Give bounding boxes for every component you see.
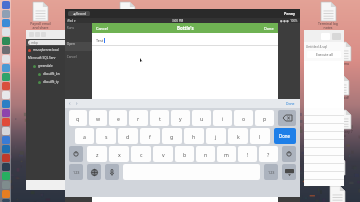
button[interactable]: u xyxy=(192,110,211,126)
staticText: e xyxy=(117,115,120,122)
staticText: s xyxy=(105,133,108,140)
button[interactable]: Dock app 15 xyxy=(2,136,10,144)
staticText: ◀ Record xyxy=(73,12,86,16)
staticText: w xyxy=(96,115,101,122)
button[interactable]: ? xyxy=(259,146,278,162)
staticText: o xyxy=(242,115,246,122)
button[interactable]: j xyxy=(206,128,226,144)
button[interactable]: Dock app 10 xyxy=(2,91,10,99)
staticText: k xyxy=(237,133,240,140)
button[interactable]: f xyxy=(140,128,160,144)
button[interactable]: o xyxy=(234,110,253,126)
button[interactable]: Numbers right xyxy=(264,164,278,180)
button[interactable]: e xyxy=(109,110,127,126)
button[interactable]: w xyxy=(89,110,107,126)
button[interactable]: Cancel xyxy=(65,55,92,64)
button[interactable]: k xyxy=(228,128,248,144)
button[interactable]: dbo.dflt_ty xyxy=(26,78,92,86)
button[interactable]: v xyxy=(153,146,173,162)
button[interactable]: Dock app 7 xyxy=(2,64,10,72)
staticText: about the cloud pdf xyxy=(40,57,56,66)
staticText: 123 xyxy=(268,170,275,175)
button[interactable]: p xyxy=(255,110,274,126)
staticText: ! xyxy=(247,151,249,158)
button[interactable]: a xyxy=(75,128,94,144)
button[interactable]: Backspace xyxy=(278,110,296,126)
button[interactable]: b xyxy=(175,146,194,162)
button[interactable]: Previous field xyxy=(69,100,71,107)
button[interactable]: Dictate xyxy=(105,164,119,180)
staticText: r xyxy=(137,115,140,122)
button[interactable]: Dock app 3 xyxy=(2,28,10,36)
button[interactable]: Hide keyboard xyxy=(282,164,296,180)
button[interactable]: h xyxy=(184,128,204,144)
button[interactable]: Dock app 5 xyxy=(2,46,10,54)
button[interactable]: Test xyxy=(92,36,278,45)
button[interactable]: q xyxy=(69,110,87,126)
button[interactable]: Dock app 22 xyxy=(2,199,10,202)
button[interactable]: Dock app 8 xyxy=(2,73,10,81)
button[interactable]: Dock app 6 xyxy=(2,55,10,63)
button[interactable]: Dock app 4 xyxy=(2,37,10,45)
button[interactable]: Dock app 0 xyxy=(2,1,10,9)
button[interactable]: g xyxy=(162,128,182,144)
button[interactable]: Numbers xyxy=(69,164,83,180)
button[interactable]: Emoji xyxy=(87,164,101,180)
button[interactable]: Dock app 19 xyxy=(2,172,10,180)
button[interactable]: ! xyxy=(238,146,257,162)
button[interactable]: ms-sqlserver.local xyxy=(26,46,92,54)
button[interactable]: Next field xyxy=(76,100,78,107)
button[interactable]: Shift right xyxy=(282,146,296,162)
staticText: b xyxy=(183,151,187,158)
button[interactable]: l xyxy=(250,128,270,144)
button[interactable]: i xyxy=(213,110,232,126)
button[interactable]: d xyxy=(118,128,138,144)
button[interactable]: Dock app 14 xyxy=(2,127,10,135)
button[interactable]: Dock app 12 xyxy=(2,109,10,117)
button[interactable]: Execute all xyxy=(307,51,341,58)
button[interactable]: n xyxy=(196,146,215,162)
button[interactable]: Dock app 16 xyxy=(2,145,10,153)
button[interactable]: Dock app 17 xyxy=(2,154,10,162)
button[interactable]: Open xyxy=(65,42,92,51)
staticText: Chat xyxy=(124,21,132,26)
button[interactable]: Done xyxy=(264,26,274,31)
button[interactable]: Dock app 2 xyxy=(2,19,10,27)
button[interactable]: Cancel xyxy=(96,26,108,31)
button[interactable]: Dock app 13 xyxy=(2,118,10,126)
button[interactable]: Shift xyxy=(69,146,83,162)
button[interactable]: greendale xyxy=(26,62,92,70)
button[interactable]: x xyxy=(109,146,129,162)
staticText: greendale xyxy=(38,64,53,68)
button[interactable]: ◀ Record xyxy=(68,11,90,16)
button[interactable]: dbo.dflt_bn xyxy=(26,70,92,78)
button[interactable]: Dock app 18 xyxy=(2,163,10,171)
button[interactable]: Dock app 11 xyxy=(2,100,10,108)
button[interactable]: y xyxy=(171,110,190,126)
button[interactable]: z xyxy=(87,146,107,162)
staticText: l xyxy=(259,133,261,140)
staticText: Penny xyxy=(284,11,296,16)
button[interactable]: r xyxy=(129,110,148,126)
button[interactable]: Dock app 1 xyxy=(2,10,10,18)
button[interactable]: Done xyxy=(286,101,295,106)
button[interactable]: m xyxy=(217,146,236,162)
button[interactable]: s xyxy=(96,128,116,144)
button[interactable]: Dock app 21 xyxy=(2,190,10,198)
staticText: f xyxy=(149,133,151,140)
button[interactable]: c xyxy=(131,146,151,162)
button[interactable]: Done xyxy=(274,128,296,144)
button[interactable]: ⌕ mbp xyxy=(28,40,90,45)
button[interactable]: Microsoft SQL Serv xyxy=(26,54,92,62)
staticText: z xyxy=(96,151,99,158)
button[interactable]: t xyxy=(150,110,169,126)
button[interactable]: Dock app 9 xyxy=(2,82,10,90)
staticText: Microsoft SQL Serv xyxy=(28,56,56,60)
